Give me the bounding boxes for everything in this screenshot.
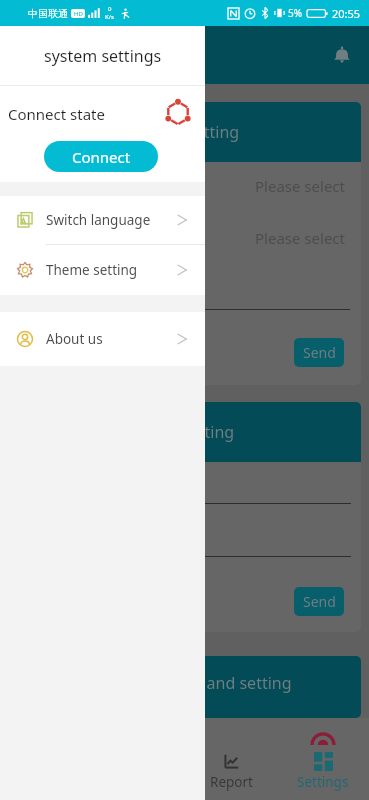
- staticText: Connect: [72, 147, 131, 167]
- staticText: 5%: [288, 6, 303, 20]
- staticText: 中国联通: [28, 7, 68, 20]
- button[interactable]: Send: [294, 587, 344, 616]
- button[interactable]: Settings: [277, 718, 369, 800]
- button[interactable]: Report: [185, 718, 277, 800]
- staticText: Connect state: [8, 104, 105, 124]
- staticText: Theme setting: [46, 261, 138, 279]
- staticText: Send: [303, 592, 336, 611]
- staticText: system settings: [44, 45, 162, 67]
- staticText: Please select: [255, 228, 345, 248]
- staticText: 0: [108, 5, 112, 13]
- staticText: About us: [46, 330, 103, 348]
- button[interactable]: Switch language: [0, 196, 205, 244]
- staticText: Report: [210, 773, 253, 791]
- button[interactable]: About us: [0, 312, 205, 366]
- button[interactable]: Connect: [44, 141, 158, 172]
- staticText: Settings: [297, 773, 349, 791]
- button[interactable]: Device firmware upgrade and setting: [8, 656, 361, 718]
- staticText: Equipment parameter setting: [17, 121, 240, 143]
- staticText: Please select: [255, 176, 345, 196]
- staticText: HD: [74, 10, 83, 18]
- staticText: Send: [303, 343, 336, 362]
- staticText: K/s: [105, 13, 114, 21]
- button[interactable]: Notifications: [331, 44, 353, 66]
- button[interactable]: Send: [294, 338, 344, 367]
- staticText: Collection parameter setting: [20, 421, 235, 443]
- staticText: Device firmware upgrade and setting: [13, 672, 292, 694]
- staticText: Switch language: [46, 211, 151, 229]
- button[interactable]: Theme setting: [0, 245, 205, 295]
- staticText: 20:55: [332, 6, 361, 21]
